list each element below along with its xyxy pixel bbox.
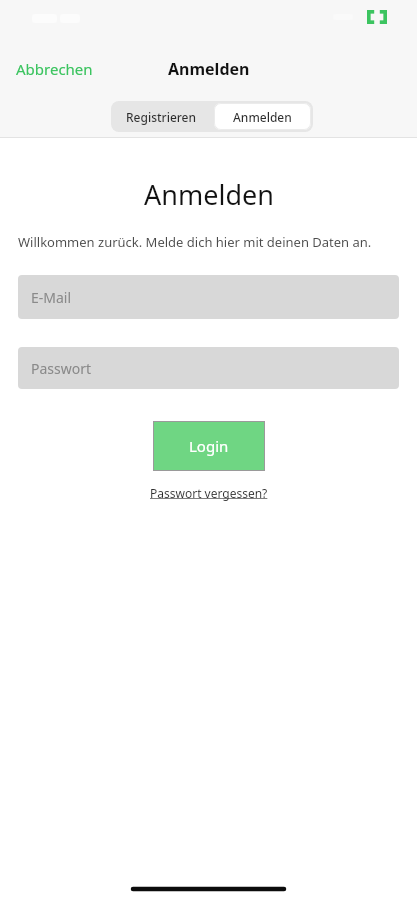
button[interactable]: Anmelden — [214, 103, 311, 130]
staticText: Passwort vergessen? — [150, 485, 268, 501]
button[interactable]: Passwort vergessen? — [144, 483, 274, 503]
button[interactable]: E-Mail — [18, 275, 399, 319]
staticText: Willkommen zurück. Melde dich hier mit d… — [18, 233, 372, 251]
staticText: Anmelden — [233, 109, 292, 125]
staticText: Login — [189, 436, 229, 456]
button[interactable]: Abbrechen — [10, 55, 99, 83]
staticText: Anmelden — [168, 58, 250, 80]
staticText: E-Mail — [31, 288, 72, 307]
button[interactable]: Registrieren — [111, 101, 212, 132]
staticText: Registrieren — [126, 109, 197, 125]
button[interactable]: Expand — [366, 8, 388, 26]
button[interactable]: Passwort — [18, 347, 399, 389]
staticText: Abbrechen — [16, 59, 93, 79]
staticText: Anmelden — [144, 176, 274, 213]
button[interactable]: Login — [153, 421, 265, 471]
staticText: Passwort — [31, 359, 92, 378]
